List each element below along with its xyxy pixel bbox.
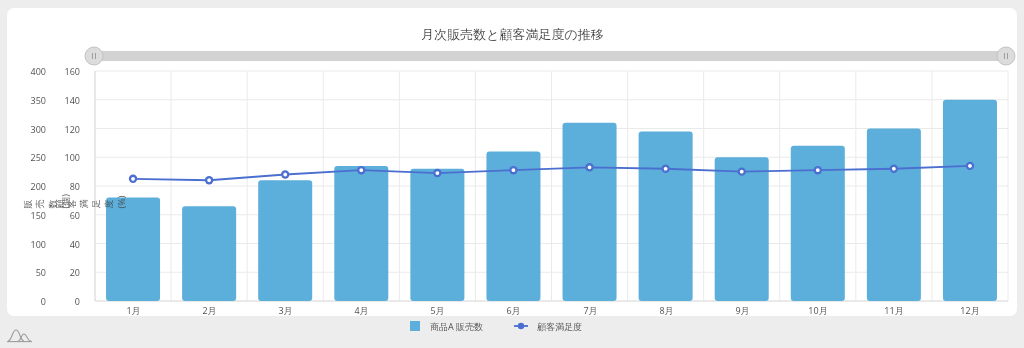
- staticText: 300: [30, 123, 46, 135]
- staticText: 9月: [735, 304, 750, 316]
- staticText: 20: [69, 266, 80, 278]
- staticText: 商品A 販売数: [430, 320, 484, 332]
- staticText: 販売数 (個): [21, 192, 70, 208]
- button[interactable]: 顧客満足度: [514, 319, 582, 333]
- staticText: 50: [35, 266, 46, 278]
- button[interactable]: 商品A 販売数: [408, 319, 484, 333]
- staticText: 40: [69, 238, 80, 250]
- staticText: 顧客満足度 (%): [53, 192, 126, 208]
- staticText: 3月: [278, 304, 293, 316]
- staticText: 400: [30, 65, 46, 77]
- button[interactable]: Chart thumbnail: [5, 326, 37, 346]
- staticText: 250: [30, 151, 46, 163]
- staticText: 160: [64, 65, 80, 77]
- staticText: 5月: [430, 304, 445, 316]
- staticText: 100: [30, 238, 46, 250]
- staticText: 6月: [506, 304, 521, 316]
- staticText: 月次販売数と顧客満足度の推移: [421, 26, 604, 42]
- staticText: 60: [69, 209, 80, 221]
- staticText: 10月: [808, 304, 828, 316]
- staticText: 200: [30, 180, 46, 192]
- staticText: 1月: [126, 304, 141, 316]
- staticText: 12月: [960, 304, 980, 316]
- button[interactable]: Range end handle: [996, 47, 1014, 65]
- staticText: 150: [30, 209, 46, 221]
- staticText: 4月: [354, 304, 369, 316]
- staticText: 350: [30, 94, 46, 106]
- staticText: 120: [64, 123, 80, 135]
- staticText: 80: [69, 180, 80, 192]
- staticText: 0: [40, 295, 46, 307]
- staticText: 11月: [884, 304, 904, 316]
- staticText: 7月: [583, 304, 598, 316]
- staticText: 2月: [202, 304, 217, 316]
- staticText: 100: [64, 151, 80, 163]
- staticText: 8月: [659, 304, 674, 316]
- staticText: 140: [64, 94, 80, 106]
- staticText: 0: [74, 295, 80, 307]
- staticText: 顧客満足度: [537, 321, 582, 332]
- button[interactable]: Range start handle: [85, 47, 103, 65]
